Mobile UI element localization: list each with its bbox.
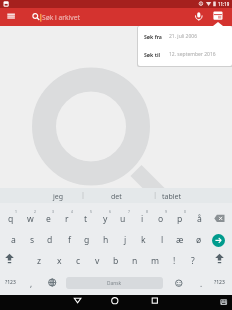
staticText: h <box>103 234 109 246</box>
button[interactable]: g <box>76 233 98 246</box>
staticText: f <box>68 234 71 246</box>
button[interactable]: x <box>48 254 70 267</box>
staticText: c <box>76 255 81 267</box>
staticText: 2 <box>34 209 36 214</box>
button[interactable]: h <box>95 233 117 246</box>
button[interactable]: l <box>151 233 173 246</box>
staticText: æ <box>176 234 184 246</box>
button[interactable]: ? <box>182 254 204 267</box>
button[interactable]: s <box>21 233 43 246</box>
staticText: t <box>84 213 88 225</box>
button[interactable] <box>212 234 225 247</box>
staticText: z <box>37 255 42 267</box>
button[interactable]: Søk fra <box>138 26 232 46</box>
button[interactable]: n <box>124 254 146 267</box>
button[interactable] <box>4 253 15 264</box>
staticText: 6 <box>109 209 111 214</box>
staticText: r <box>65 213 69 225</box>
button[interactable]: . <box>190 277 212 290</box>
button[interactable] <box>71 295 84 307</box>
staticText: det <box>111 192 122 202</box>
staticText: ø <box>196 234 202 246</box>
button[interactable]: r <box>56 212 78 225</box>
staticText: l <box>161 234 164 246</box>
staticText: n <box>132 255 138 267</box>
button[interactable]: ?123 <box>0 276 21 289</box>
button[interactable]: d <box>39 233 61 246</box>
staticText: u <box>120 213 126 225</box>
button[interactable]: Søk i arkivet <box>42 10 102 25</box>
staticText: o <box>158 213 164 225</box>
staticText: d <box>47 234 53 246</box>
button[interactable] <box>46 277 58 288</box>
staticText: ?123 <box>5 279 16 286</box>
button[interactable]: æ <box>169 233 191 246</box>
staticText: 12. september 2016 <box>169 51 216 58</box>
button[interactable]: ! <box>163 254 185 267</box>
button[interactable] <box>108 295 121 307</box>
button[interactable]: j <box>114 233 136 246</box>
button[interactable]: Søk til <box>138 46 232 66</box>
button[interactable] <box>148 295 161 307</box>
button[interactable]: å <box>188 212 210 225</box>
button[interactable]: a <box>2 233 24 246</box>
button[interactable]: i <box>131 212 153 225</box>
staticText: ?123 <box>214 279 225 286</box>
staticText: 3 <box>52 209 54 214</box>
button[interactable]: o <box>150 212 172 225</box>
staticText: e <box>46 213 51 225</box>
staticText: m <box>151 255 160 267</box>
button[interactable]: det <box>105 191 127 203</box>
button[interactable]: p <box>169 212 191 225</box>
button[interactable]: w <box>19 212 41 225</box>
staticText: 4 <box>71 209 73 214</box>
button[interactable]: v <box>86 254 108 267</box>
button[interactable]: e <box>37 212 59 225</box>
button[interactable] <box>173 278 185 289</box>
staticText: 0 <box>184 209 186 214</box>
staticText: jeg <box>53 192 64 202</box>
staticText: y <box>103 213 108 225</box>
button[interactable]: ?123 <box>208 276 230 289</box>
button[interactable]: z <box>28 254 50 267</box>
staticText: Dansk <box>107 280 122 287</box>
staticText: 5 <box>90 209 92 214</box>
button[interactable]: ø <box>188 233 210 246</box>
staticText: j <box>124 234 127 246</box>
button[interactable]: f <box>58 233 80 246</box>
staticText: w <box>27 213 34 225</box>
button[interactable] <box>220 299 228 306</box>
staticText: , <box>30 278 33 289</box>
button[interactable]: k <box>132 233 154 246</box>
button[interactable]: c <box>67 254 89 267</box>
staticText: tablet <box>162 192 182 202</box>
button[interactable]: , <box>20 277 42 290</box>
staticText: g <box>84 234 90 246</box>
staticText: Søk til <box>144 51 160 58</box>
button[interactable]: y <box>94 212 116 225</box>
staticText: x <box>57 255 62 267</box>
staticText: v <box>95 255 100 267</box>
button[interactable]: Dansk <box>66 277 163 289</box>
button[interactable] <box>214 214 225 223</box>
button[interactable]: t <box>75 212 97 225</box>
staticText: a <box>11 234 16 246</box>
button[interactable]: q <box>0 212 22 225</box>
staticText: b <box>113 255 119 267</box>
button[interactable]: jeg <box>47 191 69 203</box>
staticText: q <box>8 213 14 225</box>
staticText: 8 <box>146 209 148 214</box>
staticText: i <box>141 213 144 225</box>
staticText: å <box>197 213 202 225</box>
button[interactable] <box>214 253 225 264</box>
staticText: 21. juli 2006 <box>169 33 198 40</box>
button[interactable]: b <box>105 254 127 267</box>
staticText: k <box>141 234 146 246</box>
staticText: p <box>177 213 183 225</box>
button[interactable]: tablet <box>161 191 183 203</box>
staticText: Søk fra <box>144 33 162 40</box>
staticText: 11:19 <box>218 1 230 7</box>
staticText: 9 <box>165 209 167 214</box>
button[interactable]: m <box>144 254 166 267</box>
button[interactable]: u <box>112 212 134 225</box>
